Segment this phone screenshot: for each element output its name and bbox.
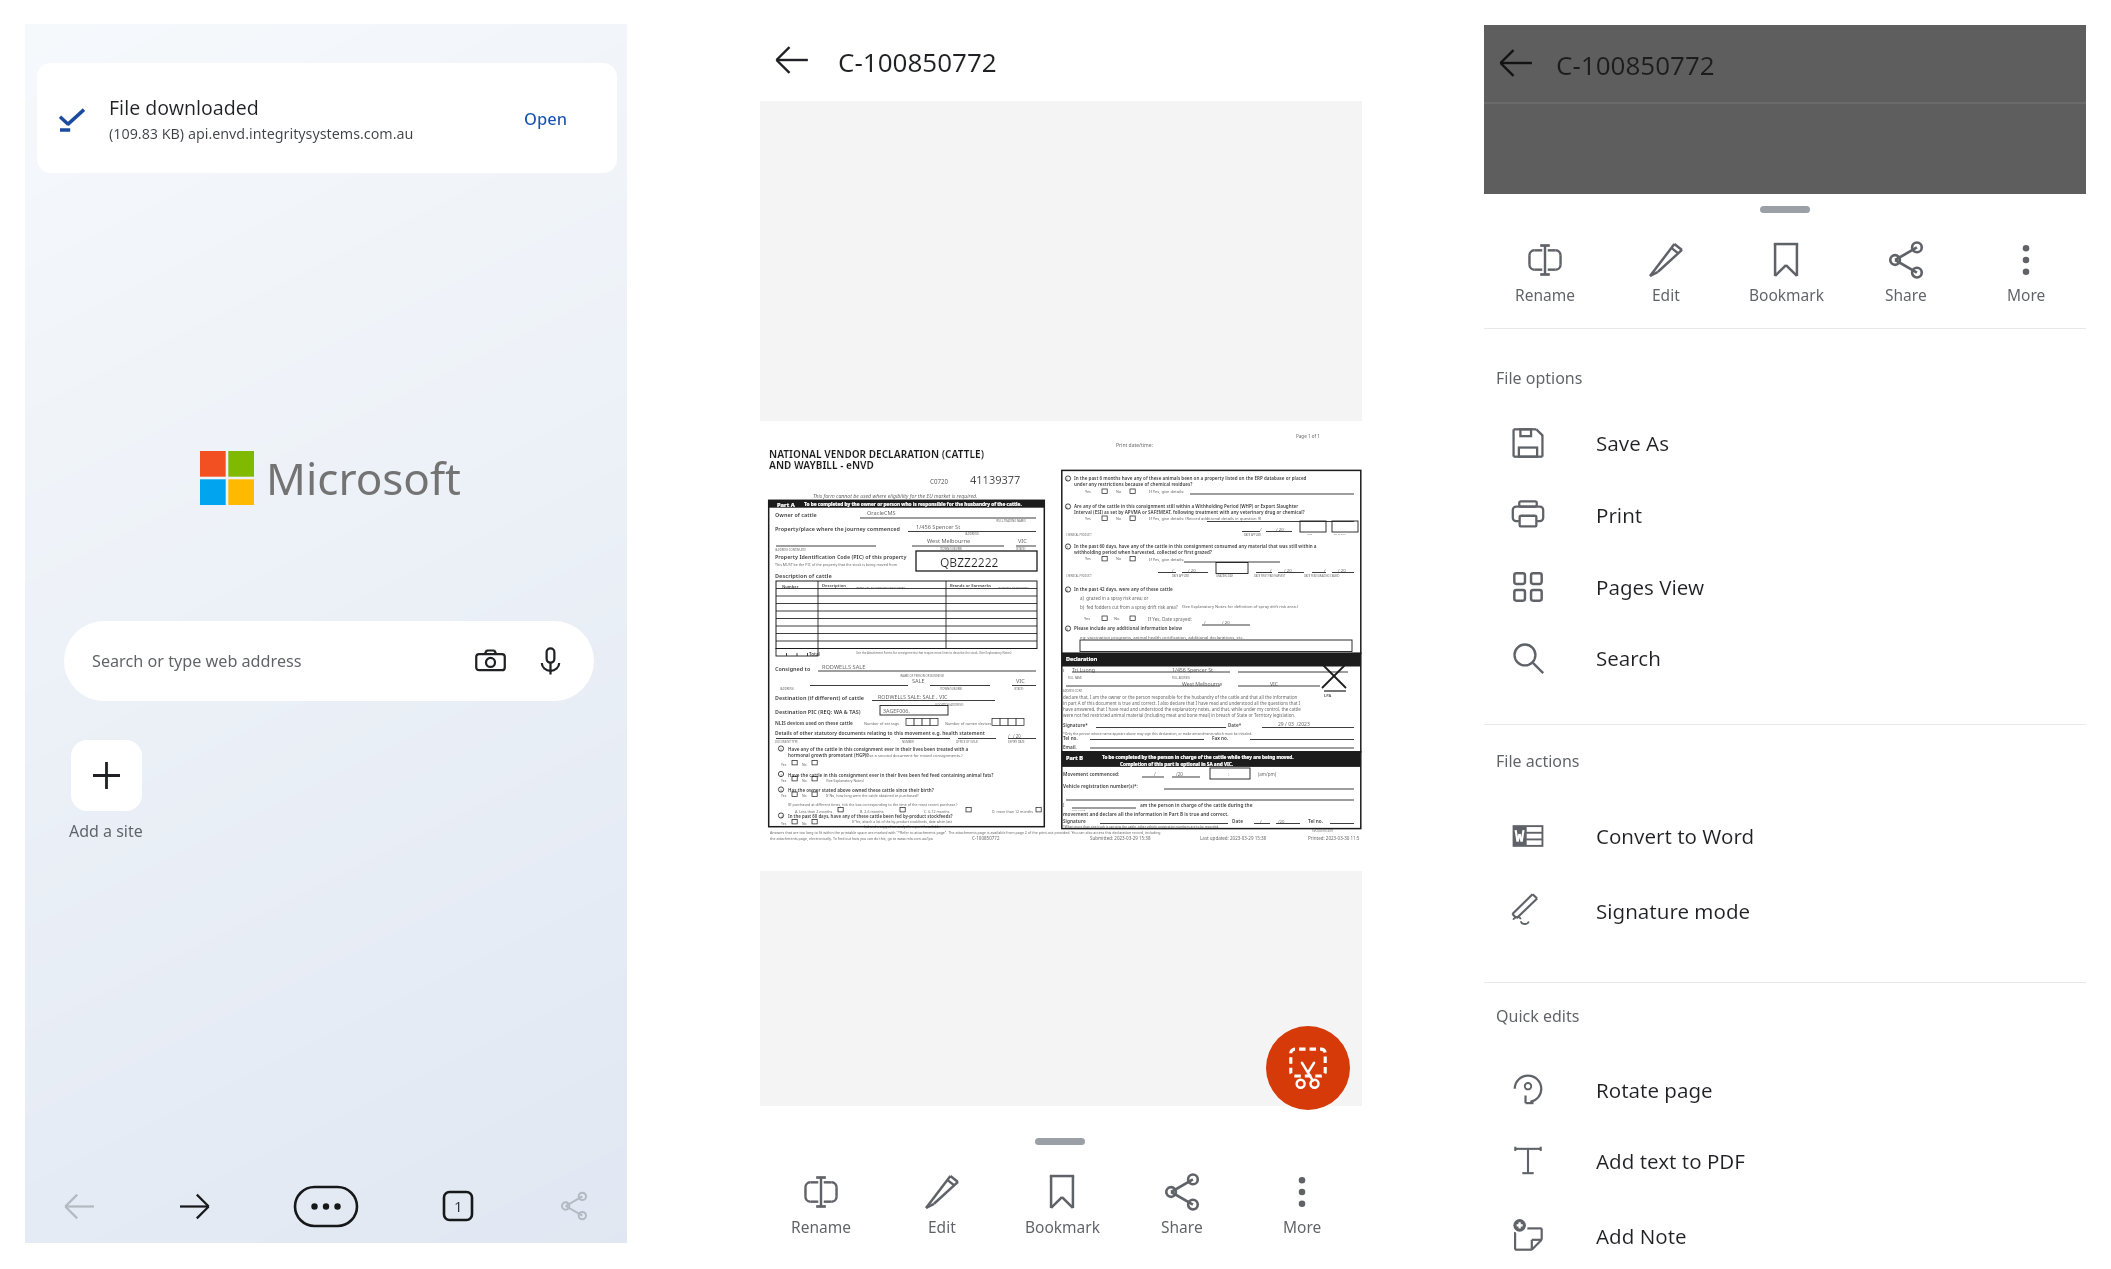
staticText: DATE FIRST PAD/HARVEST	[1254, 574, 1286, 578]
staticText: (ADDRESS)	[965, 532, 979, 536]
staticText: (ADDRESS CONTINUED)	[775, 548, 806, 552]
button[interactable]: File downloaded	[37, 63, 617, 173]
staticText: In the past 42 days, were any of these c…	[1074, 586, 1173, 592]
button[interactable]: Search	[1484, 624, 2086, 692]
button[interactable]: Snip	[1266, 1026, 1350, 1110]
button[interactable]: Add text to PDF	[1484, 1127, 2086, 1195]
staticText: To be completed by the person in charge …	[1102, 754, 1294, 760]
staticText: 29 / 03 /2023	[1278, 721, 1310, 728]
staticText: Signature	[1063, 818, 1086, 824]
button[interactable]: Camera search	[470, 641, 510, 681]
staticText: Are any of the cattle in this consignmen…	[1074, 503, 1299, 509]
staticText: AND WAYBILL - eNVD	[769, 458, 874, 472]
staticText: (BREED, SEX, E.G. HEREFORD CROSS STEERS)	[856, 585, 906, 588]
button[interactable]: Add a site	[71, 740, 142, 811]
staticText: FULL NAME	[1068, 676, 1083, 680]
staticText: Bookmark	[1025, 1216, 1100, 1237]
staticText: have answered, that I have read and unde…	[1063, 706, 1301, 712]
staticText: In the past 60 days, have any of the cat…	[1074, 543, 1317, 549]
staticText: More	[1283, 1216, 1322, 1237]
button[interactable]: Forward	[170, 1182, 218, 1230]
staticText: (am/pm)	[1258, 771, 1277, 777]
staticText: 6	[1066, 505, 1068, 510]
staticText: 3	[780, 788, 782, 793]
button[interactable]: Bookmark	[1002, 1163, 1122, 1268]
button[interactable]: Back	[766, 34, 818, 86]
staticText: Printed: 2023-03-30 11:5	[1308, 835, 1360, 841]
staticText: This MUST be the PIC of the property tha…	[775, 562, 898, 567]
staticText: In the past 6 months have any of these a…	[1074, 475, 1307, 481]
staticText: DATE APPLIED	[1172, 574, 1190, 578]
staticText: (STATE)	[1016, 547, 1026, 551]
staticText: I	[1063, 802, 1065, 808]
staticText: (See Explanatory Notes)	[826, 778, 864, 783]
button[interactable]: Open	[516, 96, 575, 140]
button[interactable]: More	[1242, 1163, 1362, 1268]
staticText: /20	[1176, 771, 1183, 777]
button[interactable]: Signature mode	[1484, 877, 2086, 945]
button[interactable]: More options	[294, 1182, 358, 1230]
staticText: To be completed by the owner or person w…	[804, 501, 1022, 508]
staticText: Number of rumen devices	[945, 721, 992, 726]
staticText: (TOWN/SUBURB)	[940, 687, 963, 691]
staticText: b) fed fodders cut from a spray drift ri…	[1080, 604, 1178, 610]
staticText: Page 1 of 1	[1296, 433, 1320, 439]
staticText: Total	[809, 651, 820, 657]
staticText: C-100850772	[838, 44, 997, 79]
staticText: Fax no.	[1212, 735, 1229, 741]
button[interactable]: Voice search	[530, 641, 570, 681]
button[interactable]: Back	[55, 1182, 103, 1230]
staticText: Interval (ESI) as set by APVMA or SAFEME…	[1074, 509, 1305, 515]
staticText: Tri Luong	[1072, 666, 1095, 673]
button[interactable]: Add Note	[1484, 1202, 2086, 1269]
button[interactable]: Rename	[760, 1163, 881, 1268]
staticText: (Use a second document for mixed consign…	[865, 753, 963, 759]
button[interactable]: Share	[1846, 231, 1966, 326]
staticText: RODWELLS SALE: SALE , VIC	[878, 693, 948, 700]
staticText: Owner of cattle	[775, 511, 817, 518]
staticText: Yes	[781, 762, 787, 767]
staticText: (IF PRESENT OR REQUIRED)	[998, 585, 1029, 588]
staticText: (TOWN/SUBURB)	[940, 547, 963, 551]
staticText: 1	[780, 747, 782, 752]
button[interactable]: Save As	[1484, 409, 2086, 477]
staticText: Microsoft	[266, 448, 462, 508]
staticText: NATIONAL VENDOR DECLARATION (CATTLE)	[769, 447, 985, 461]
button[interactable]: More	[1966, 231, 2086, 326]
staticText: Description of cattle	[775, 572, 832, 580]
staticText: movement and declare all the information…	[1063, 811, 1229, 817]
button[interactable]: Edit	[1605, 231, 1726, 326]
button[interactable]: Share	[550, 1182, 598, 1230]
button[interactable]: Rotate page	[1484, 1056, 2086, 1124]
button[interactable]: Search or type web address	[64, 621, 594, 701]
staticText: 4	[781, 814, 783, 819]
staticText: SALE	[912, 677, 925, 685]
button[interactable]: Rename	[1484, 231, 1605, 326]
staticText: Yes	[1085, 489, 1091, 494]
staticText: Have any of the cattle in this consignme…	[788, 746, 969, 752]
staticText: Please include any additional informatio…	[1074, 625, 1183, 631]
button[interactable]: Tabs	[434, 1182, 482, 1230]
staticText: In the past 60 days, have any of these c…	[788, 813, 953, 819]
button[interactable]: Print	[1484, 481, 2086, 549]
staticText: fed and a copy of an analyst's report if…	[864, 824, 941, 829]
staticText: Yes	[781, 793, 787, 798]
button[interactable]: Convert to Word	[1484, 802, 2086, 870]
button[interactable]: Back	[1490, 37, 1542, 89]
staticText: NUMBER	[902, 740, 914, 744]
staticText: :	[1228, 771, 1230, 777]
staticText: OracleCMS	[867, 509, 896, 517]
staticText: FULL NAME	[1072, 808, 1085, 811]
staticText: Tel no.	[1063, 735, 1078, 741]
staticText: *When more than one truck is carrying th…	[1063, 825, 1220, 829]
button[interactable]: Share	[1122, 1163, 1242, 1268]
staticText: /	[1324, 567, 1326, 573]
staticText: declare that, I am the owner or the pers…	[1063, 694, 1298, 700]
button[interactable]: Edit	[881, 1163, 1002, 1268]
staticText: Declaration	[1066, 655, 1098, 662]
button[interactable]: Bookmark	[1726, 231, 1846, 326]
staticText: DATE FEED/GRAZING CEASED	[1304, 574, 1340, 578]
button[interactable]: Pages View	[1484, 553, 2086, 621]
staticText: in part A of this document is true and c…	[1063, 700, 1301, 706]
staticText: CHEMICAL PRODUCT	[1066, 533, 1092, 537]
